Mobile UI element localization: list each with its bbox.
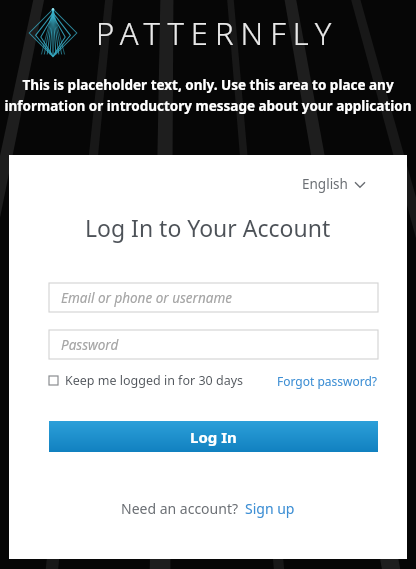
- staticText: Email or phone or username: [61, 289, 232, 307]
- staticText: Log In: [190, 427, 237, 447]
- button[interactable]: Password: [49, 330, 378, 359]
- button[interactable]: Keep me logged in for 30 days: [49, 372, 244, 389]
- button[interactable]: Forgot password?: [277, 373, 378, 389]
- button[interactable]: Email or phone or username: [49, 283, 378, 312]
- staticText: Log In to Your Account: [85, 212, 331, 243]
- staticText: Sign up: [245, 499, 295, 518]
- staticText: Password: [61, 336, 119, 354]
- button[interactable]: Sign up: [245, 499, 295, 518]
- staticText: English: [302, 175, 348, 193]
- staticText: PATTERNFLY: [96, 12, 339, 54]
- staticText: Keep me logged in for 30 days: [65, 372, 244, 389]
- button[interactable]: English: [298, 173, 369, 195]
- staticText: Forgot password?: [277, 373, 378, 389]
- other: PatternFly logo: [24, 4, 82, 62]
- button[interactable]: Log In: [49, 421, 378, 452]
- staticText: This is placeholder text, only. Use this…: [0, 76, 416, 115]
- staticText: Need an account?: [121, 499, 239, 518]
